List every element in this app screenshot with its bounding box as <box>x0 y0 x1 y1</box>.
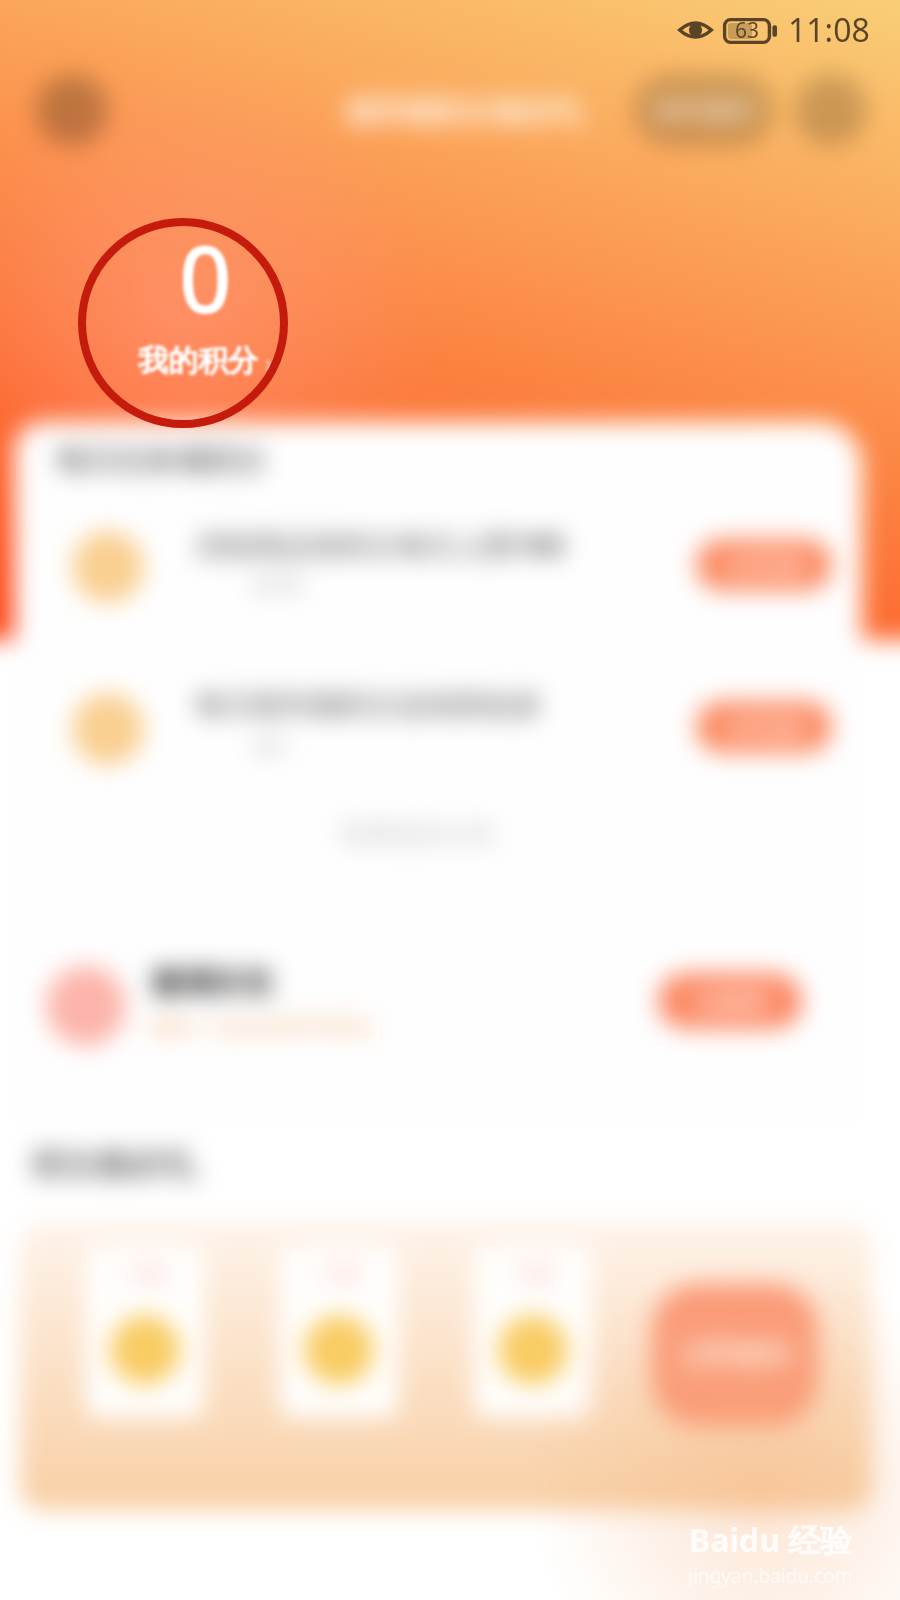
button[interactable]: 立即签到 <box>652 1284 818 1426</box>
staticText: 11:08 <box>788 8 870 52</box>
staticText: 63 <box>735 16 760 45</box>
staticText: 每日签到领积分连续奖励多 <box>195 687 543 724</box>
staticText: 每日任务领积分 <box>56 442 266 480</box>
button[interactable]: 返回 <box>36 74 108 146</box>
staticText: 去完成 <box>727 712 802 743</box>
button[interactable]: 去邀请 <box>658 973 802 1029</box>
staticText: 签到领积分换好礼 <box>345 93 585 131</box>
staticText: 积分换好礼 <box>32 1144 197 1186</box>
staticText: 签到规则 <box>654 95 754 126</box>
button[interactable]: 签到规则 <box>634 74 774 146</box>
button[interactable]: 去完成 <box>696 701 832 753</box>
staticText: 去邀请 <box>693 986 768 1017</box>
staticText: 去完成 <box>727 550 802 581</box>
staticText: 我的积分 <box>138 342 258 380</box>
button[interactable]: 更多 <box>795 74 867 146</box>
staticText: 邀请一位好友得500积分 <box>150 1012 376 1041</box>
staticText: jingyan.baidu.com <box>688 1563 853 1589</box>
staticText: 邀请好友 <box>150 963 274 1002</box>
button[interactable]: +10 <box>474 1246 592 1418</box>
staticText: › <box>258 344 273 379</box>
button[interactable]: 浏览商品得积分每日上限100 <box>30 511 850 621</box>
staticText: 0 <box>179 215 232 340</box>
button[interactable]: 每日签到领积分连续奖励多 <box>30 673 850 783</box>
other: 护眼模式 <box>678 19 713 41</box>
button[interactable]: 邀请好友 <box>46 966 126 1046</box>
button[interactable]: +10 <box>280 1246 398 1418</box>
button[interactable]: 0 <box>117 215 293 380</box>
staticText: 浏览商品得积分每日上限100 <box>195 525 564 565</box>
button[interactable]: +10 <box>86 1246 204 1418</box>
staticText: Baidu 经验 <box>689 1518 853 1562</box>
button[interactable]: 去完成 <box>696 539 832 591</box>
staticText: 立即签到 <box>681 1338 789 1372</box>
